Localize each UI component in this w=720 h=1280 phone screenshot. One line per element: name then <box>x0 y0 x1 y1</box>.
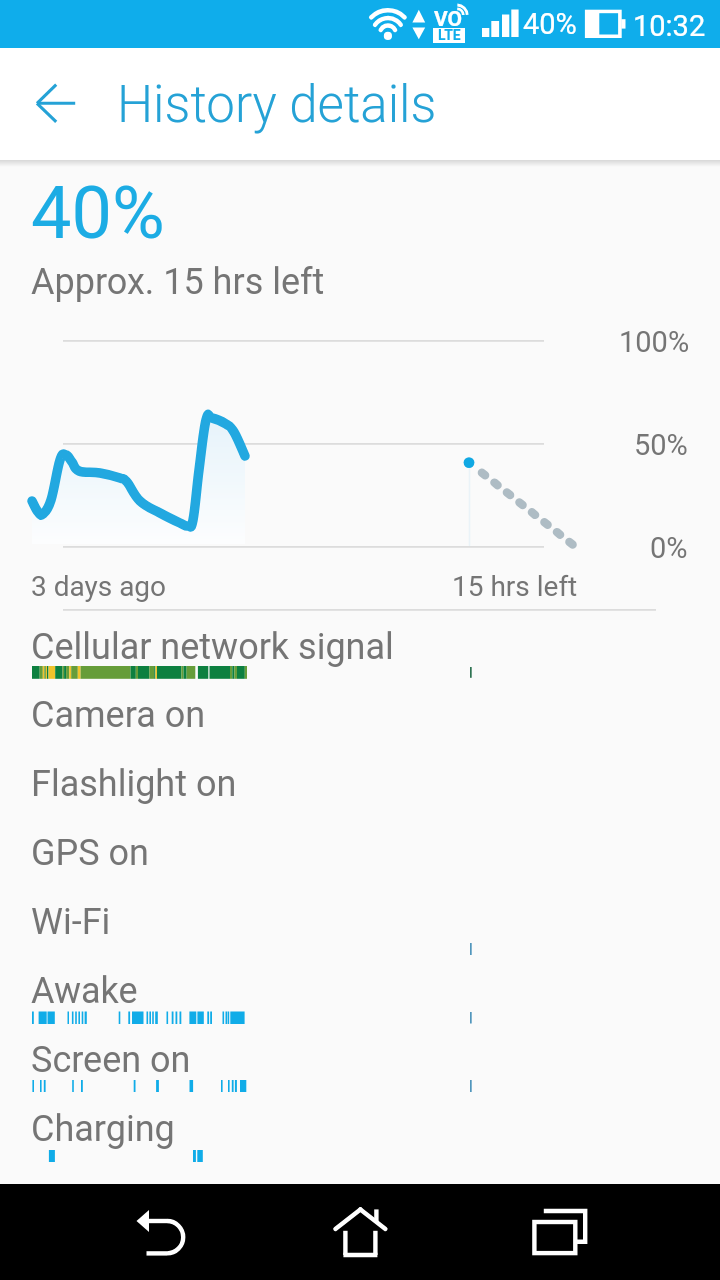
staticText: 3 days ago <box>31 570 167 603</box>
staticText: 40% <box>523 7 577 41</box>
staticText: 15 hrs left <box>452 570 578 603</box>
staticText: LTE <box>438 27 461 43</box>
staticText: 40% <box>31 171 165 255</box>
staticText: Camera on <box>31 694 206 736</box>
staticText: Charging <box>31 1108 175 1150</box>
staticText: Wi-Fi <box>31 901 111 943</box>
staticText: 0% <box>650 531 688 565</box>
staticText: 10:32 <box>633 9 706 43</box>
staticText: Flashlight on <box>31 763 237 805</box>
button[interactable]: Back <box>12 67 84 139</box>
button[interactable]: Recents <box>480 1184 720 1280</box>
staticText: Awake <box>31 970 138 1012</box>
button[interactable]: Home <box>240 1184 480 1280</box>
staticText: VO <box>434 7 463 32</box>
button[interactable]: Back <box>0 1184 240 1280</box>
staticText: Cellular network signal <box>31 626 394 668</box>
staticText: Approx. 15 hrs left <box>31 261 325 303</box>
staticText: GPS on <box>31 832 149 874</box>
staticText: 100% <box>619 325 690 359</box>
staticText: 50% <box>634 428 688 462</box>
staticText: History details <box>117 75 437 135</box>
staticText: Screen on <box>31 1039 191 1081</box>
